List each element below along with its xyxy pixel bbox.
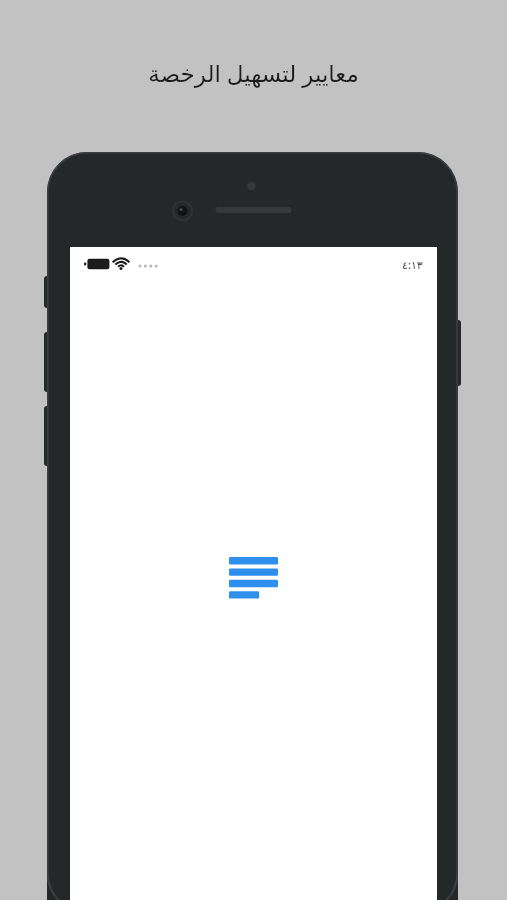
staticText: ٤:١٣	[402, 257, 423, 272]
staticText: معايير لتسهيل الرخصة	[0, 57, 507, 88]
button[interactable]: App logo	[223, 551, 284, 601]
